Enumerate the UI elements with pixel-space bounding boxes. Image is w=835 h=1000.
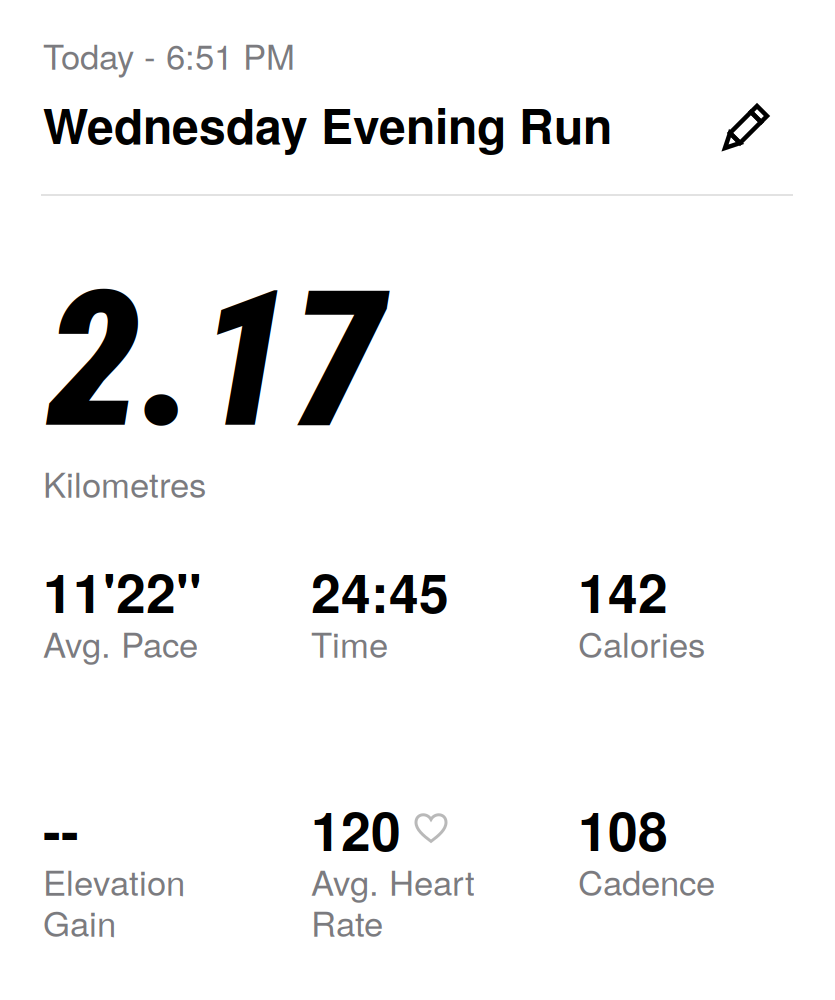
staticText: 108	[578, 791, 668, 867]
staticText: 120	[311, 791, 401, 867]
button[interactable]: Edit workout name	[715, 91, 784, 162]
staticText: Elevation	[43, 856, 185, 906]
staticText: Calories	[578, 618, 705, 668]
staticText: Avg. Pace	[43, 618, 198, 668]
staticText: 142	[578, 553, 668, 629]
staticText: Cadence	[578, 856, 715, 906]
staticText: Kilometres	[43, 458, 206, 508]
staticText: --	[43, 791, 79, 867]
staticText: Wednesday Evening Run	[43, 90, 612, 159]
staticText: 24:45	[311, 553, 449, 629]
staticText: Time	[311, 618, 388, 668]
staticText: Today - 6:51 PM	[43, 30, 295, 80]
staticText: Avg. Heart	[311, 856, 475, 906]
staticText: Gain	[43, 897, 116, 947]
staticText: 2.17	[47, 249, 385, 471]
staticText: Rate	[311, 897, 383, 947]
staticText: 11'22''	[43, 553, 202, 629]
